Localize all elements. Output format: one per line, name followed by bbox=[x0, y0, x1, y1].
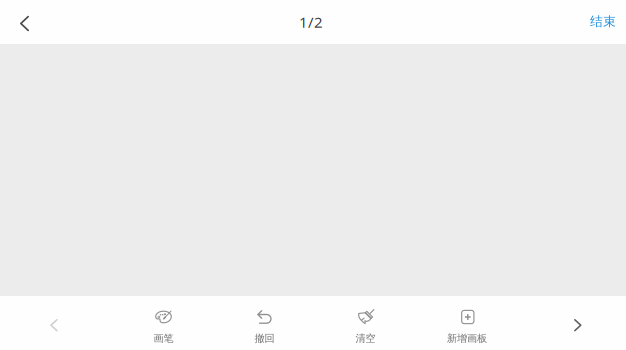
staticText: 撤回 bbox=[254, 332, 274, 345]
button[interactable]: Previous board bbox=[30, 301, 78, 349]
button[interactable]: 撤回 bbox=[224, 296, 304, 350]
staticText: 1/2 bbox=[299, 12, 323, 32]
button[interactable]: 画笔 bbox=[123, 296, 203, 350]
staticText: 新增画板 bbox=[447, 332, 487, 345]
button[interactable]: 新增画板 bbox=[427, 296, 507, 350]
staticText: 结束 bbox=[590, 13, 616, 29]
button[interactable]: Next board bbox=[554, 301, 602, 349]
button[interactable]: Back bbox=[2, 1, 46, 45]
staticText: 清空 bbox=[355, 332, 375, 345]
staticText: 画笔 bbox=[153, 332, 173, 345]
button[interactable]: 清空 bbox=[325, 296, 405, 350]
button[interactable]: 结束 bbox=[577, 0, 626, 43]
